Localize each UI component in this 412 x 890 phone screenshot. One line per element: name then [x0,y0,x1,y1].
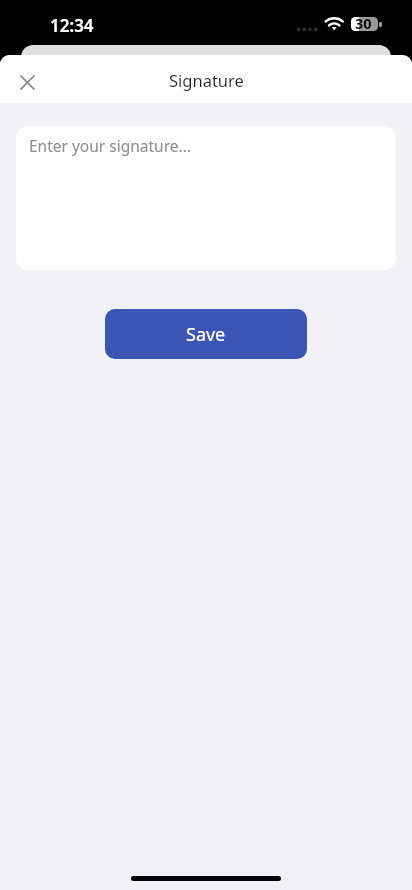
staticText: Signature [169,69,244,91]
staticText: 12:34 [50,14,94,37]
staticText: Save [186,322,226,347]
button[interactable]: Save [105,309,307,359]
button[interactable]: Close [7,62,47,102]
button[interactable]: Enter your signature... [16,126,396,270]
staticText: Enter your signature... [29,135,191,156]
staticText: 30 [355,13,372,33]
